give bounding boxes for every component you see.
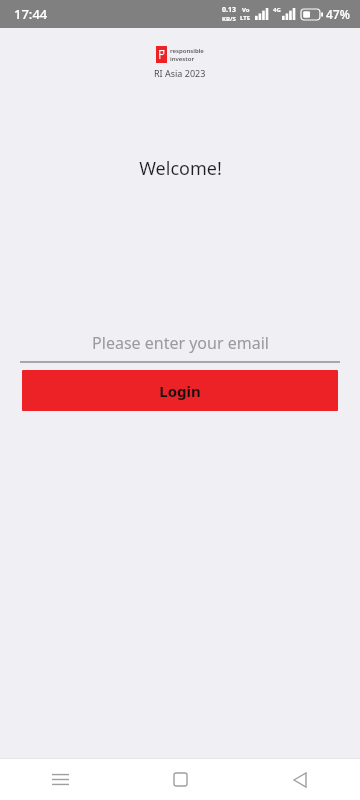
button[interactable]: Back <box>240 759 360 800</box>
staticText: investor <box>170 55 195 63</box>
staticText: 17:44 <box>14 5 48 23</box>
staticText: RI Asia 2023 <box>154 67 206 79</box>
staticText: KB/S <box>222 15 236 23</box>
staticText: 0.13 <box>222 5 236 15</box>
staticText: Please enter your email <box>92 332 269 354</box>
staticText: 47% <box>326 6 350 22</box>
staticText: LTE <box>240 14 251 22</box>
staticText: Login <box>159 381 201 401</box>
staticText: 4G <box>273 6 281 14</box>
button[interactable]: Please enter your email <box>0 332 360 363</box>
staticText: Vo <box>242 6 250 14</box>
button[interactable]: Recent apps <box>0 759 120 800</box>
staticText: responsible <box>170 47 204 55</box>
staticText: Welcome! <box>139 156 222 181</box>
button[interactable]: Home <box>120 759 240 800</box>
button[interactable]: Login <box>22 370 338 411</box>
